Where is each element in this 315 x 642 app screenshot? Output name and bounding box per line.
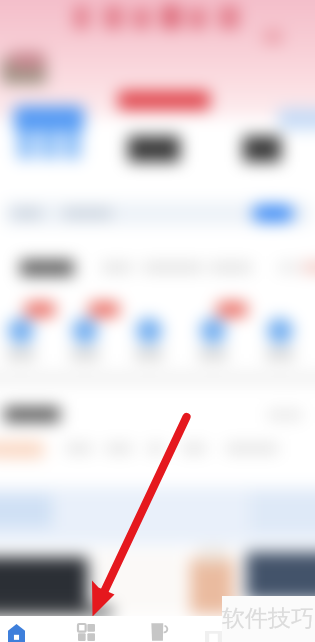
button[interactable]: Home bbox=[0, 616, 33, 642]
button[interactable]: Profile bbox=[198, 616, 231, 642]
staticText: 软件技巧 bbox=[222, 604, 314, 633]
button[interactable]: Categories bbox=[70, 616, 103, 642]
button[interactable]: Cart bbox=[144, 616, 177, 642]
